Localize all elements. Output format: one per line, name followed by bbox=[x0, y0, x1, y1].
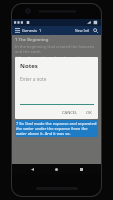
button[interactable]: Menu bbox=[14, 27, 21, 34]
button[interactable]: OK bbox=[84, 109, 94, 116]
staticText: 1 bbox=[39, 28, 42, 33]
staticText: Enter a note bbox=[20, 76, 47, 82]
button[interactable]: New Intl bbox=[75, 28, 90, 33]
staticText: In the beginning God created the heavens… bbox=[15, 44, 98, 54]
button[interactable]: Recent apps bbox=[77, 165, 86, 174]
staticText: 6 And God said, "Let there be an expanse… bbox=[15, 103, 98, 118]
staticText: Notes bbox=[20, 62, 38, 70]
button[interactable]: Back bbox=[28, 165, 37, 174]
button[interactable]: Enter a note bbox=[20, 76, 94, 82]
staticText: CANCEL bbox=[62, 110, 78, 115]
staticText: 2 Now the earth was formless and empty, … bbox=[15, 55, 98, 75]
staticText: 3 And God said, "Let there be light," an… bbox=[15, 76, 98, 96]
staticText: New Intl bbox=[75, 28, 90, 33]
staticText: OK bbox=[86, 110, 92, 115]
button[interactable]: Search bbox=[92, 27, 99, 34]
button[interactable]: Genesis bbox=[22, 28, 37, 33]
staticText: 1 The Beginning bbox=[15, 37, 49, 43]
button[interactable]: CANCEL bbox=[60, 109, 80, 116]
staticText: Genesis bbox=[22, 28, 37, 33]
button[interactable]: 7 So God made the expanse and separated … bbox=[15, 120, 98, 137]
staticText: 7 So God made the expanse and separated … bbox=[16, 121, 97, 136]
button[interactable]: 1 bbox=[39, 28, 42, 33]
button[interactable]: Home bbox=[52, 165, 61, 174]
